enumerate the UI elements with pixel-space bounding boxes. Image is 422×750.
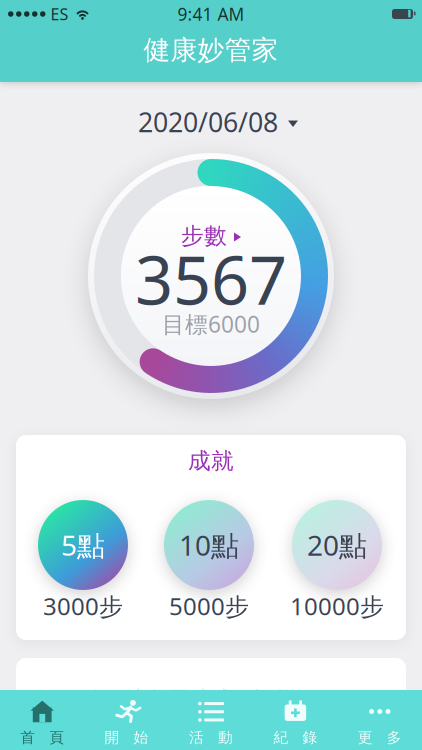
staticText: 目標6000 <box>162 309 260 339</box>
staticText: 更 多 <box>358 728 402 746</box>
staticText: 健康妙管家 <box>143 34 278 66</box>
staticText: 9:41 AM <box>177 2 244 25</box>
staticText: 5000步 <box>169 590 249 622</box>
staticText: 20點 <box>307 526 367 564</box>
staticText: 3000步 <box>43 590 123 622</box>
staticText: 10000步 <box>290 590 384 622</box>
staticText: 今日步數已達成目標的59% <box>85 684 337 712</box>
staticText: ES <box>50 3 68 25</box>
staticText: 3567 <box>135 235 287 323</box>
staticText: 首 頁 <box>20 728 64 746</box>
staticText: 10點 <box>179 526 239 564</box>
staticText: 步數 <box>181 222 227 250</box>
staticText: 2020/06/08 <box>138 104 278 140</box>
staticText: 開 始 <box>105 728 149 746</box>
staticText: 活 動 <box>189 728 233 746</box>
staticText: 5點 <box>61 526 105 564</box>
staticText: 紀 錄 <box>273 728 317 746</box>
staticText: 成就 <box>188 447 234 475</box>
